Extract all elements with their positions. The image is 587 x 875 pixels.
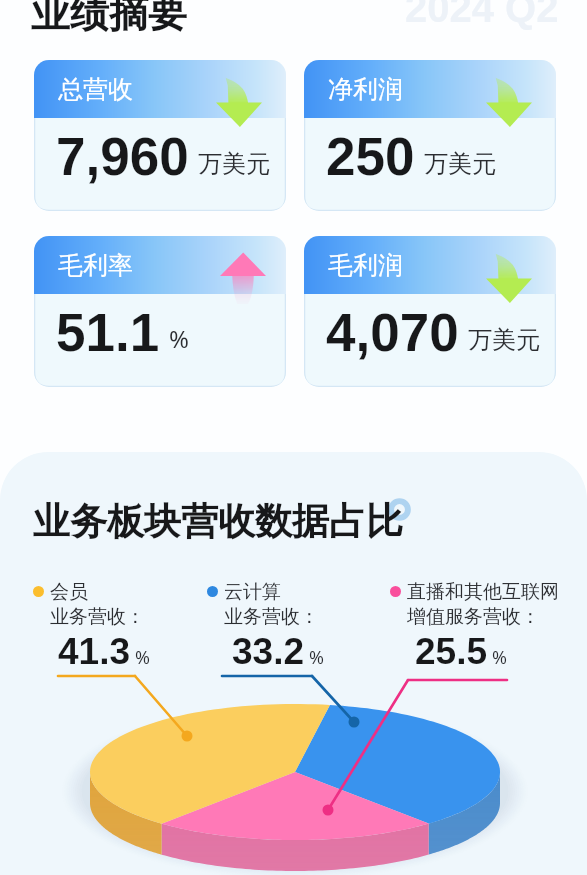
button[interactable]: 净利润 [304, 60, 556, 211]
staticText: 2024 Q2 [405, 0, 559, 31]
staticText: 万美元 [424, 149, 496, 179]
button[interactable]: 直播和其他互联网 [389, 580, 567, 675]
staticText: 41.3 [58, 631, 131, 672]
button[interactable]: 云计算 [206, 580, 384, 675]
staticText: 业绩摘要 [31, 0, 187, 38]
staticText: 会员 [50, 580, 88, 604]
staticText: 7,960 [56, 127, 189, 186]
staticText: 净利润 [328, 74, 403, 105]
staticText: % [309, 645, 324, 670]
button[interactable]: 会员 [32, 580, 210, 675]
staticText: 25.5 [415, 631, 488, 672]
staticText: 250 [326, 127, 415, 186]
staticText: 万美元 [198, 149, 270, 179]
button[interactable]: 毛利润 [304, 236, 556, 387]
staticText: 51.1 [56, 303, 160, 362]
staticText: 总营收 [58, 74, 133, 105]
staticText: 业务板块营收数据占比 [33, 498, 403, 545]
staticText: % [135, 645, 150, 670]
staticText: 业务营收： [224, 605, 319, 629]
staticText: 毛利润 [328, 250, 403, 281]
staticText: 4,070 [326, 303, 459, 362]
staticText: 增值服务营收： [407, 605, 540, 629]
staticText: 毛利率 [58, 250, 133, 281]
staticText: 万美元 [468, 325, 540, 355]
staticText: % [169, 322, 189, 355]
staticText: 直播和其他互联网 [407, 580, 559, 604]
staticText: 33.2 [232, 631, 305, 672]
staticText: 云计算 [224, 580, 281, 604]
staticText: 业务营收： [50, 605, 145, 629]
button[interactable]: 毛利率 [34, 236, 286, 387]
staticText: % [492, 645, 507, 670]
button[interactable]: 总营收 [34, 60, 286, 211]
